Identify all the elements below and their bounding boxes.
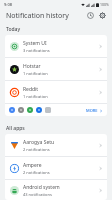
staticText: All apps [6,125,25,132]
staticText: Ampere [23,162,42,169]
staticText: 3 notifications [23,48,50,53]
staticText: Reddit [23,86,39,93]
button[interactable]: Reddit [5,81,107,103]
staticText: Notification history [6,11,69,21]
staticText: System UI [23,40,47,47]
button[interactable]: Ampere [5,157,107,179]
staticText: Hotstar [23,63,41,70]
button[interactable]: MORE [86,108,103,113]
staticText: 43 notifications [23,192,52,197]
button[interactable]: System UI [5,35,107,57]
button[interactable]: MORE [5,104,107,116]
staticText: 1 notification [23,94,48,99]
staticText: 1 notification [23,71,48,76]
staticText: 100% [100,2,109,7]
button[interactable]: Hotstar [5,58,107,80]
button[interactable]: Android system [5,180,107,200]
button[interactable]: Settings [97,10,108,21]
staticText: Aarogya Setu [23,139,55,146]
staticText: 9:08 [4,2,12,7]
button[interactable]: History [85,10,96,21]
staticText: MORE [86,108,98,113]
staticText: 2 notifications [23,147,50,152]
button[interactable]: Aarogya Setu [5,134,107,156]
staticText: Android system [23,184,60,191]
staticText: Today [6,26,21,33]
staticText: 2 notifications [23,170,50,175]
